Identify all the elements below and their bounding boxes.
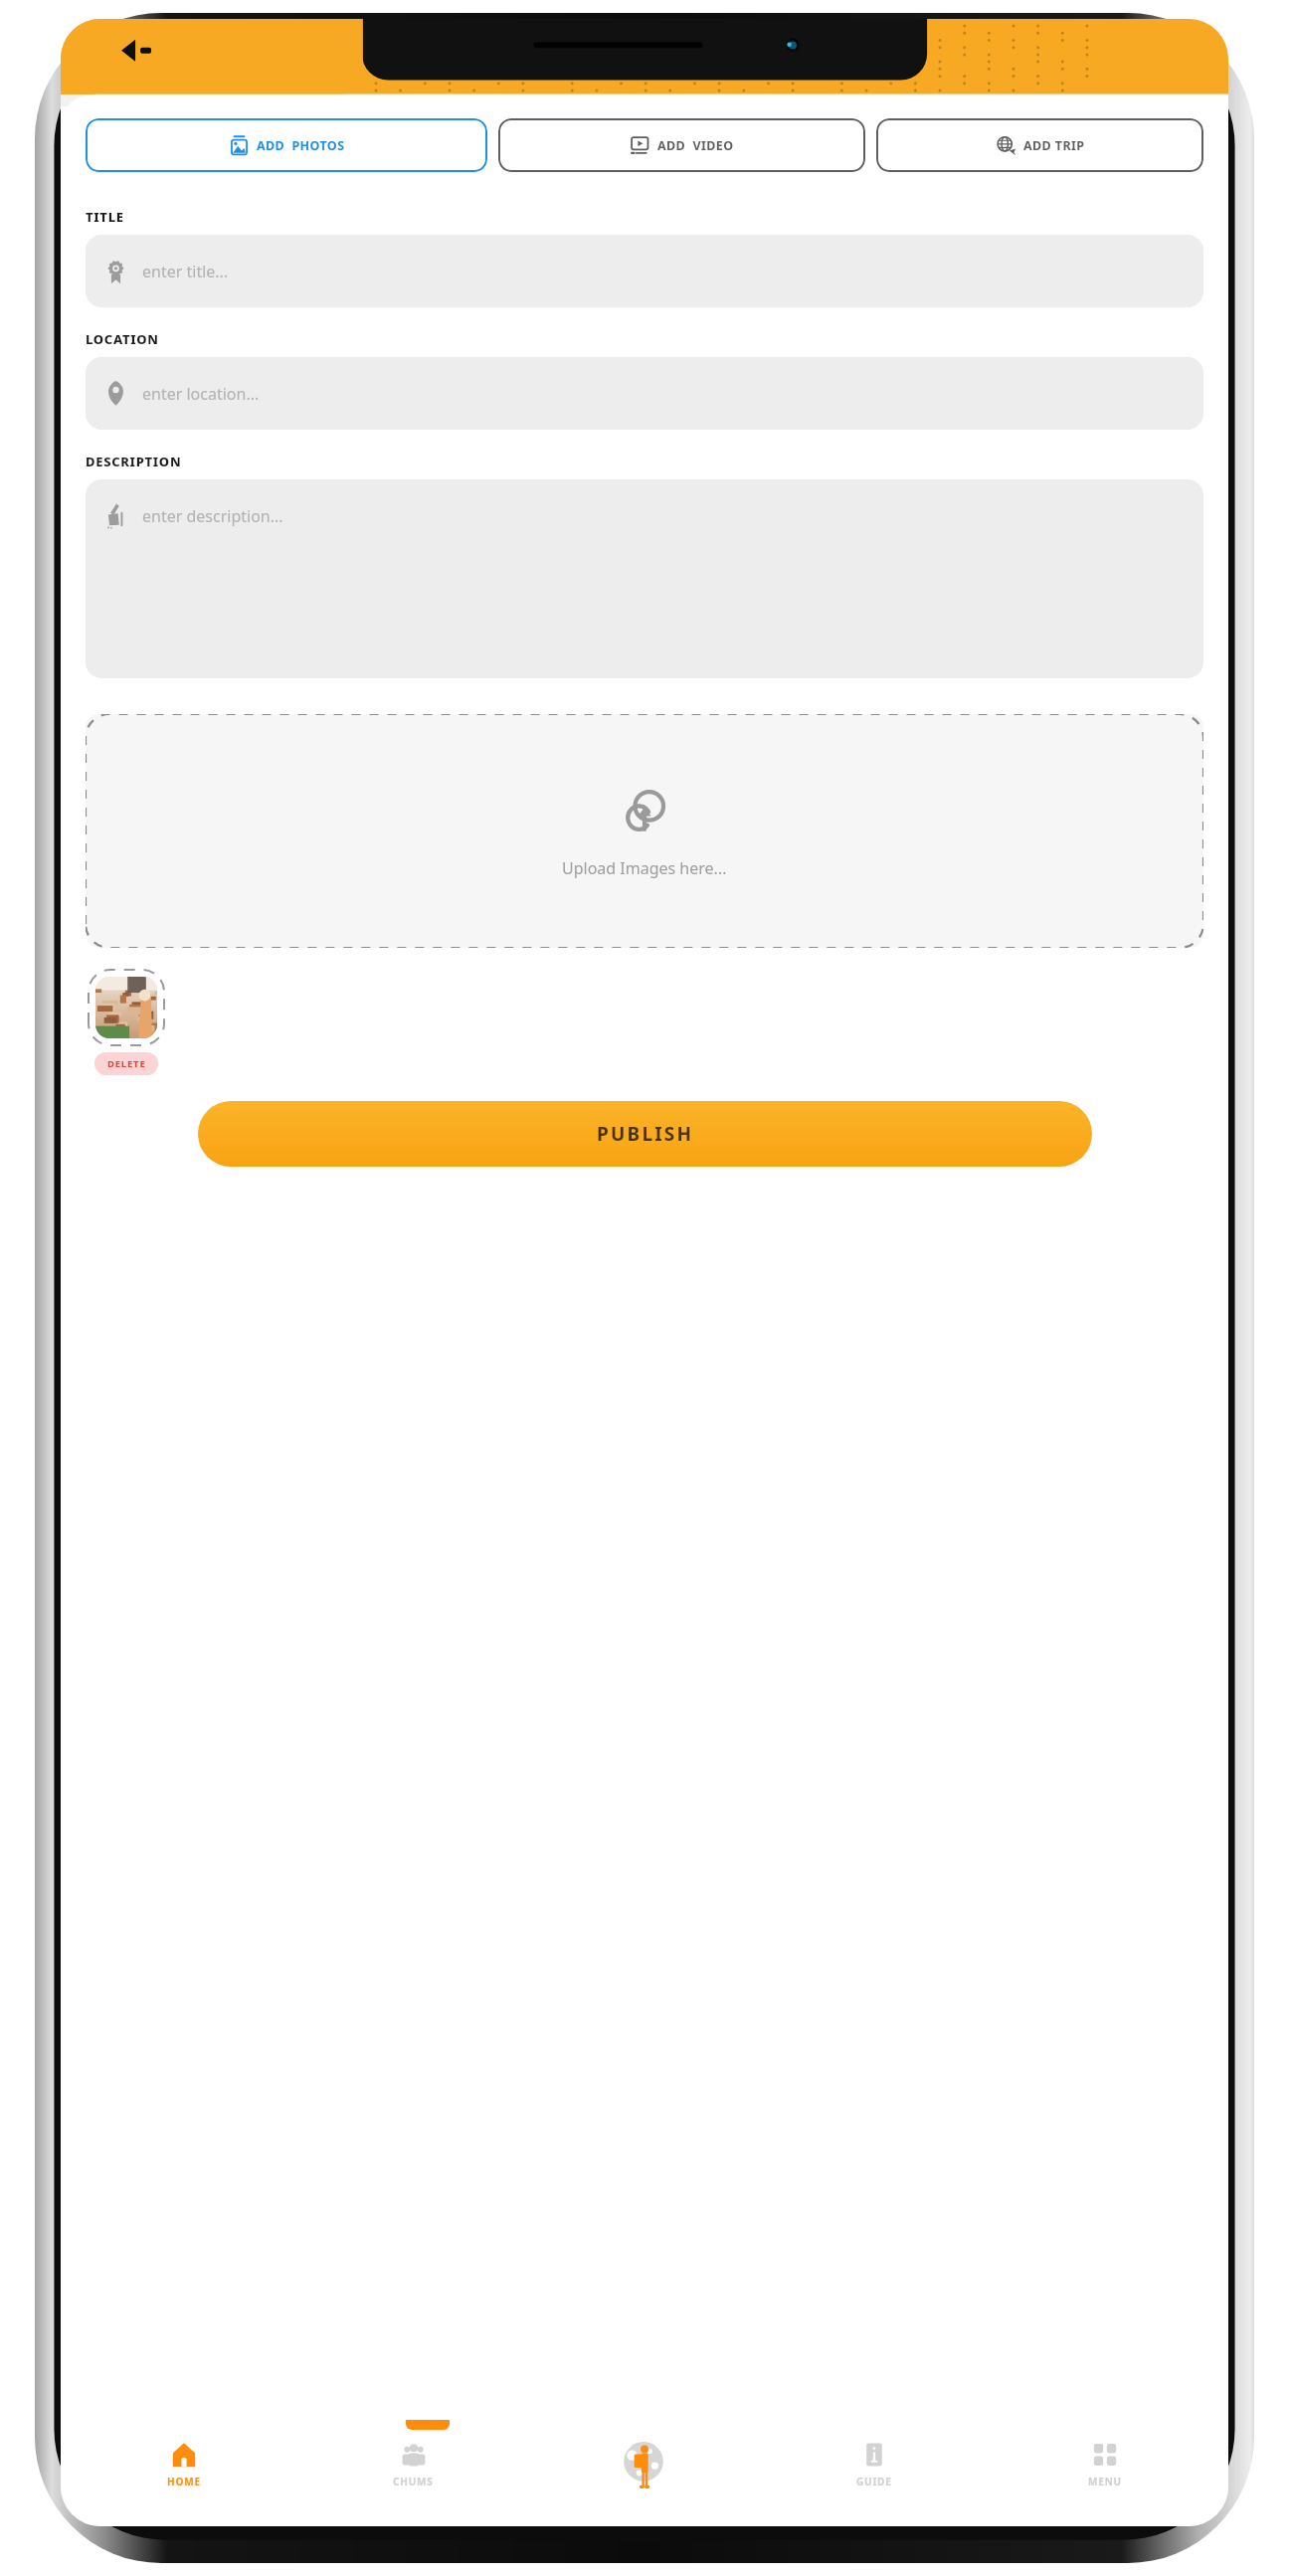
button[interactable]: ADD PHOTOS [86, 118, 487, 172]
button[interactable]: enter title... [86, 235, 1203, 307]
staticText: GUIDE [856, 2475, 892, 2488]
staticText: Upload Images here... [562, 857, 727, 879]
staticText: CHUMS [393, 2475, 434, 2488]
staticText: enter description... [142, 505, 283, 527]
staticText: ADD VIDEO [657, 137, 734, 154]
button[interactable]: enter location... [86, 357, 1203, 430]
staticText: DESCRIPTION [86, 453, 182, 470]
button[interactable]: CHUMS [298, 2419, 528, 2510]
staticText: DELETE [107, 1057, 146, 1070]
staticText: HOME [167, 2475, 201, 2488]
button[interactable]: DELETE [94, 1052, 158, 1075]
button[interactable]: Explore [528, 2419, 759, 2510]
button[interactable]: GUIDE [759, 2419, 990, 2510]
button[interactable]: MENU [990, 2419, 1220, 2510]
button[interactable]: ADD TRIP [876, 118, 1203, 172]
staticText: TITLE [86, 208, 124, 226]
staticText: PUBLISH [597, 1121, 694, 1147]
staticText: LOCATION [86, 330, 159, 348]
staticText: enter location... [142, 383, 260, 405]
button[interactable]: enter description... [86, 479, 1203, 678]
button[interactable]: PUBLISH [198, 1101, 1092, 1167]
staticText: ADD TRIP [1023, 137, 1085, 154]
staticText: enter title... [142, 261, 229, 282]
button[interactable]: ADD VIDEO [498, 118, 865, 172]
button[interactable]: Upload images [86, 714, 1203, 948]
button[interactable]: Photo thumbnail [89, 970, 164, 1045]
staticText: MENU [1088, 2475, 1122, 2488]
button[interactable]: HOME [69, 2419, 298, 2510]
staticText: ADD PHOTOS [257, 137, 345, 154]
